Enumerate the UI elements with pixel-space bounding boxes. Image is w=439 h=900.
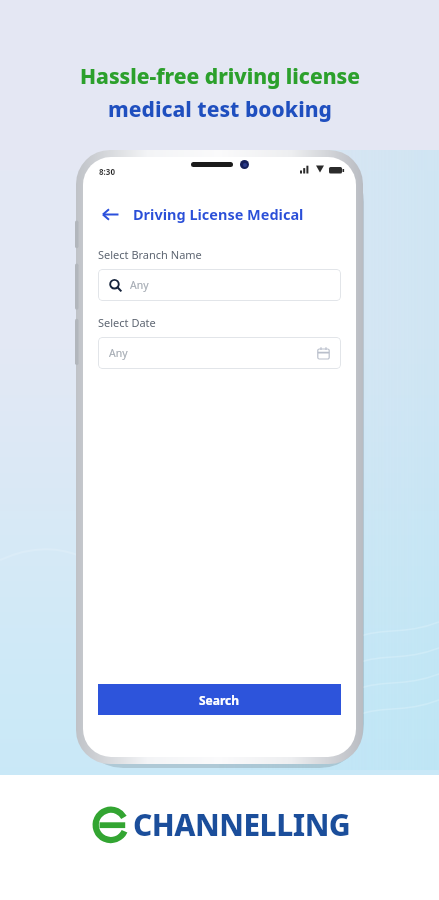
staticText: medical test booking	[108, 95, 332, 124]
staticText: Any	[109, 346, 128, 360]
staticText: Select Branch Name	[98, 247, 202, 262]
button[interactable]: Back	[95, 199, 125, 229]
staticText: Search	[199, 692, 240, 708]
staticText: Any	[130, 278, 149, 292]
staticText: Hassle-free driving license	[80, 62, 360, 91]
button[interactable]: Any	[98, 269, 341, 301]
staticText: Select Date	[98, 315, 156, 330]
staticText: Driving License Medical	[133, 204, 304, 224]
staticText: CHANNELLING	[133, 804, 351, 845]
button[interactable]: Search	[98, 684, 341, 715]
button[interactable]: Any	[98, 337, 341, 369]
staticText: 8:30	[99, 166, 115, 177]
